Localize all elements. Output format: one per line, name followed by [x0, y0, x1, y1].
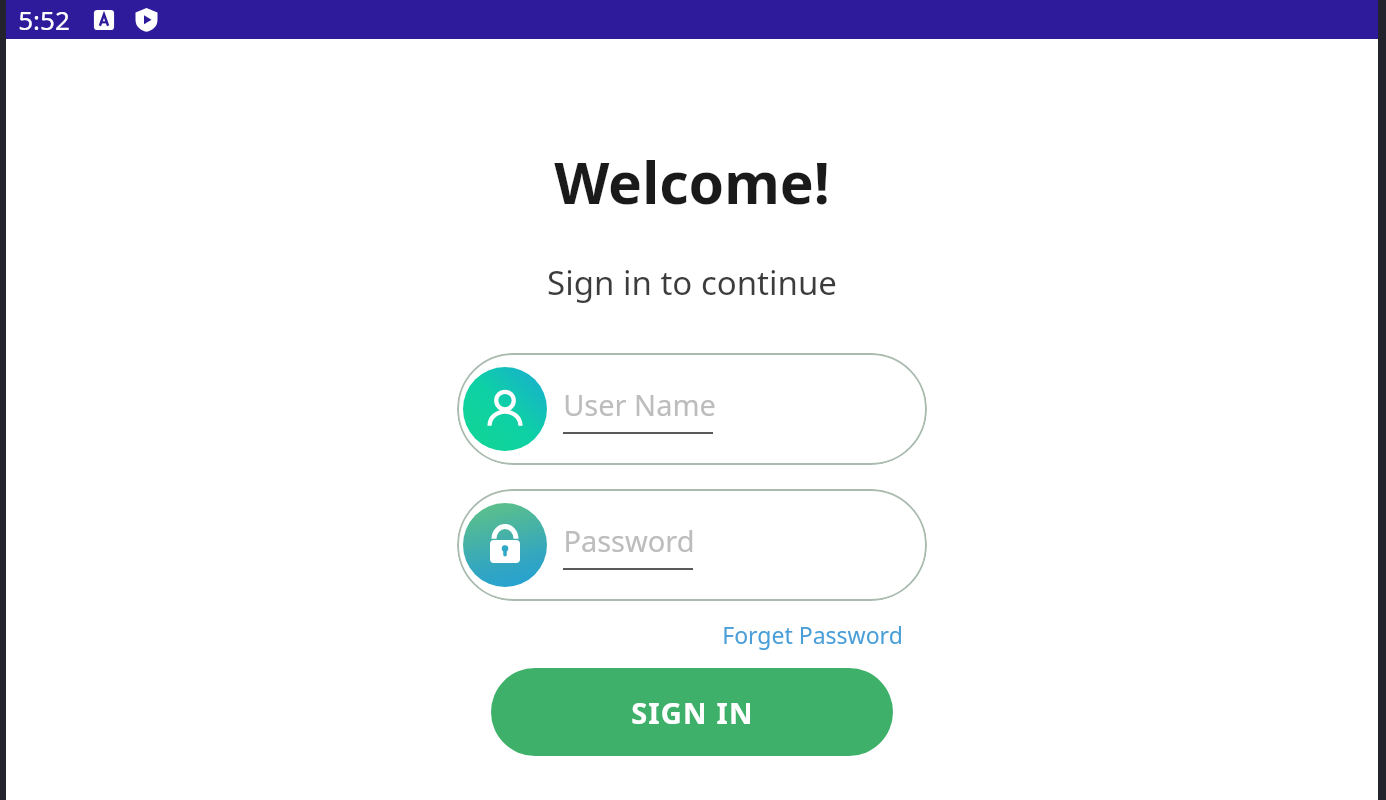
button[interactable]: User name — [457, 353, 927, 465]
staticText: SIGN IN — [631, 693, 754, 732]
staticText: User Name — [563, 385, 716, 424]
staticText: Password — [563, 521, 695, 560]
staticText: Forget Password — [722, 619, 903, 650]
other: User name — [480, 384, 530, 434]
button[interactable]: SIGN IN — [491, 668, 893, 756]
staticText: Welcome! — [554, 143, 830, 221]
button[interactable]: Forget Password — [718, 615, 907, 654]
staticText: 5:52 — [18, 2, 70, 37]
staticText: Sign in to continue — [547, 260, 837, 305]
other: Password — [480, 520, 530, 570]
button[interactable]: Password — [457, 489, 927, 601]
